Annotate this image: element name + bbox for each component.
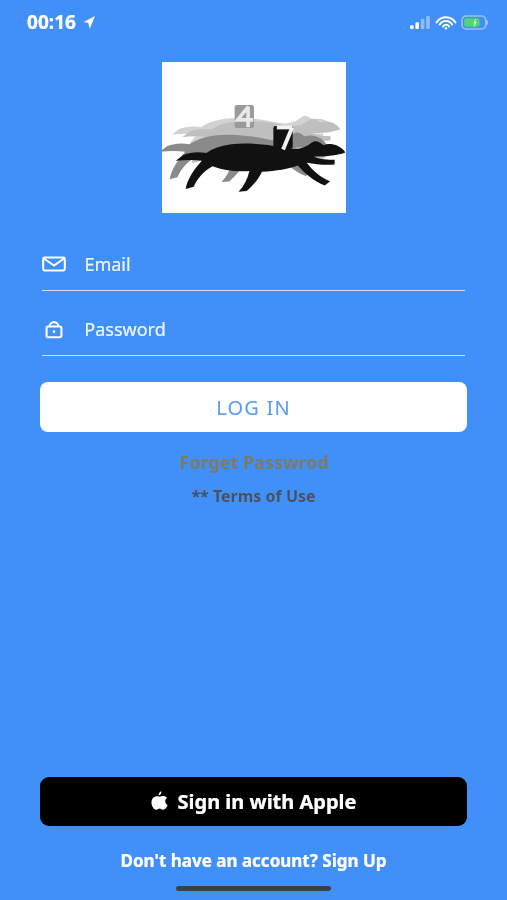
button[interactable]: Email	[42, 247, 465, 291]
button[interactable]: Forget Passwrod	[0, 450, 507, 475]
staticText: Forget Passwrod	[179, 450, 329, 475]
button[interactable]: Password	[42, 312, 465, 356]
staticText: ** Terms of Use	[191, 485, 316, 507]
button[interactable]: LOG IN	[40, 382, 467, 432]
staticText: Password	[84, 317, 166, 342]
button[interactable]: ** Terms of Use	[0, 485, 507, 507]
staticText: LOG IN	[216, 394, 291, 421]
staticText: Sign in with Apple	[177, 788, 357, 815]
staticText: Email	[84, 252, 131, 277]
staticText: Don't have an account? Sign Up	[120, 849, 387, 872]
staticText: 00:16	[27, 9, 76, 35]
button[interactable]: Sign in with Apple	[40, 777, 467, 826]
button[interactable]: Don't have an account? Sign Up	[0, 849, 507, 872]
